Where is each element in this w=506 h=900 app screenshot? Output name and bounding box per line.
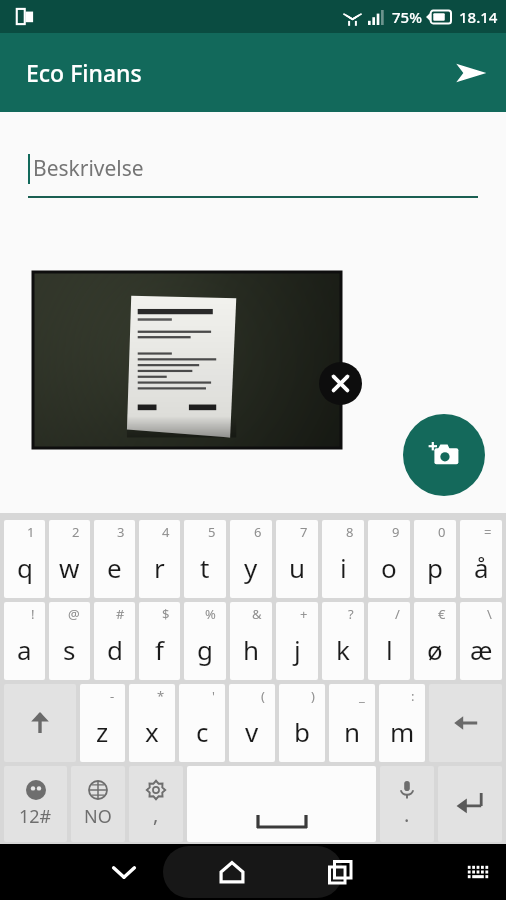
staticText: ( — [261, 687, 265, 705]
staticText: / — [395, 605, 400, 623]
staticText: 18.14 — [459, 7, 498, 27]
staticText: Beskrivelse — [33, 154, 144, 183]
staticText: ø — [427, 632, 443, 667]
staticText: f — [155, 632, 164, 667]
button[interactable]: Hide keyboard — [96, 844, 152, 900]
other: Multi window — [16, 7, 35, 26]
staticText: . — [404, 801, 410, 828]
button[interactable]: @ — [49, 602, 90, 680]
staticText: * — [157, 687, 165, 705]
staticText: b — [294, 714, 310, 749]
staticText: s — [63, 632, 76, 667]
staticText: w — [59, 550, 80, 585]
staticText: Eco Finans — [26, 57, 142, 88]
button[interactable]: / — [368, 602, 410, 680]
button[interactable]: € — [414, 602, 456, 680]
button[interactable]: ? — [322, 602, 364, 680]
staticText: æ — [470, 632, 493, 667]
staticText: q — [17, 550, 33, 585]
staticText: 0 — [438, 523, 446, 541]
button[interactable]: - — [80, 684, 125, 762]
staticText: % — [205, 605, 216, 623]
button[interactable]: \ — [460, 602, 502, 680]
staticText: \ — [487, 605, 492, 623]
button[interactable]: % — [184, 602, 226, 680]
button[interactable]: ( — [229, 684, 275, 762]
button[interactable]: Voice input — [380, 766, 434, 842]
staticText: ! — [31, 605, 35, 623]
button[interactable]: 7 — [276, 520, 318, 598]
staticText: 2 — [72, 523, 80, 541]
button[interactable]: Change language — [71, 766, 125, 842]
button[interactable]: 1 — [4, 520, 45, 598]
staticText: _ — [359, 687, 365, 705]
button[interactable]: * — [129, 684, 175, 762]
staticText: v — [245, 714, 259, 749]
button[interactable]: 9 — [368, 520, 410, 598]
staticText: x — [145, 714, 159, 749]
staticText: 75% — [392, 7, 422, 27]
staticText: + — [300, 605, 308, 623]
button[interactable]: Add photo — [403, 414, 485, 496]
button[interactable]: + — [276, 602, 318, 680]
button[interactable]: 6 — [230, 520, 272, 598]
staticText: ) — [311, 687, 315, 705]
staticText: r — [154, 550, 165, 585]
button[interactable]: Remove photo — [319, 362, 362, 405]
staticText: @ — [68, 605, 80, 623]
staticText: # — [116, 605, 125, 623]
button[interactable]: 0 — [414, 520, 456, 598]
button[interactable]: Send — [444, 46, 498, 100]
staticText: NO — [84, 804, 112, 829]
staticText: - — [110, 687, 115, 705]
button[interactable]: Beskrivelse — [28, 148, 478, 204]
button[interactable]: ! — [4, 602, 45, 680]
button[interactable]: 5 — [184, 520, 226, 598]
staticText: , — [153, 801, 159, 828]
staticText: : — [411, 687, 415, 705]
staticText: l — [386, 632, 393, 667]
staticText: z — [96, 714, 109, 749]
staticText: 3 — [117, 523, 125, 541]
button[interactable]: ' — [179, 684, 225, 762]
button[interactable]: 2 — [49, 520, 90, 598]
button[interactable]: _ — [329, 684, 375, 762]
staticText: 6 — [254, 523, 262, 541]
staticText: 12# — [19, 804, 52, 829]
button[interactable]: ) — [279, 684, 325, 762]
button[interactable]: Backspace — [429, 684, 502, 762]
button[interactable]: & — [230, 602, 272, 680]
staticText: y — [244, 550, 258, 585]
staticText: a — [17, 632, 32, 667]
button[interactable]: 3 — [94, 520, 135, 598]
staticText: d — [107, 632, 123, 667]
button[interactable]: Home — [204, 844, 260, 900]
button[interactable]: Settings — [129, 766, 183, 842]
button[interactable]: Recent apps — [312, 844, 368, 900]
button[interactable]: : — [379, 684, 425, 762]
staticText: ' — [212, 687, 215, 705]
staticText: c — [196, 714, 209, 749]
button[interactable]: 4 — [139, 520, 180, 598]
staticText: o — [381, 550, 397, 585]
staticText: i — [340, 550, 347, 585]
staticText: k — [336, 632, 350, 667]
button[interactable]: Receipt photo — [33, 272, 341, 448]
button[interactable]: Keyboard active — [454, 848, 502, 896]
button[interactable]: Shift — [4, 684, 76, 762]
staticText: t — [200, 550, 210, 585]
button[interactable]: $ — [139, 602, 180, 680]
staticText: 1 — [27, 523, 35, 541]
button[interactable]: # — [94, 602, 135, 680]
staticText: 9 — [392, 523, 400, 541]
button[interactable]: Enter — [438, 766, 502, 842]
staticText: h — [243, 632, 260, 667]
button[interactable]: Space — [187, 766, 376, 842]
staticText: € — [438, 605, 446, 623]
button[interactable]: 8 — [322, 520, 364, 598]
button[interactable]: Symbols — [4, 766, 67, 842]
staticText: & — [252, 605, 262, 623]
staticText: 5 — [208, 523, 216, 541]
staticText: j — [294, 632, 301, 667]
button[interactable]: = — [460, 520, 502, 598]
